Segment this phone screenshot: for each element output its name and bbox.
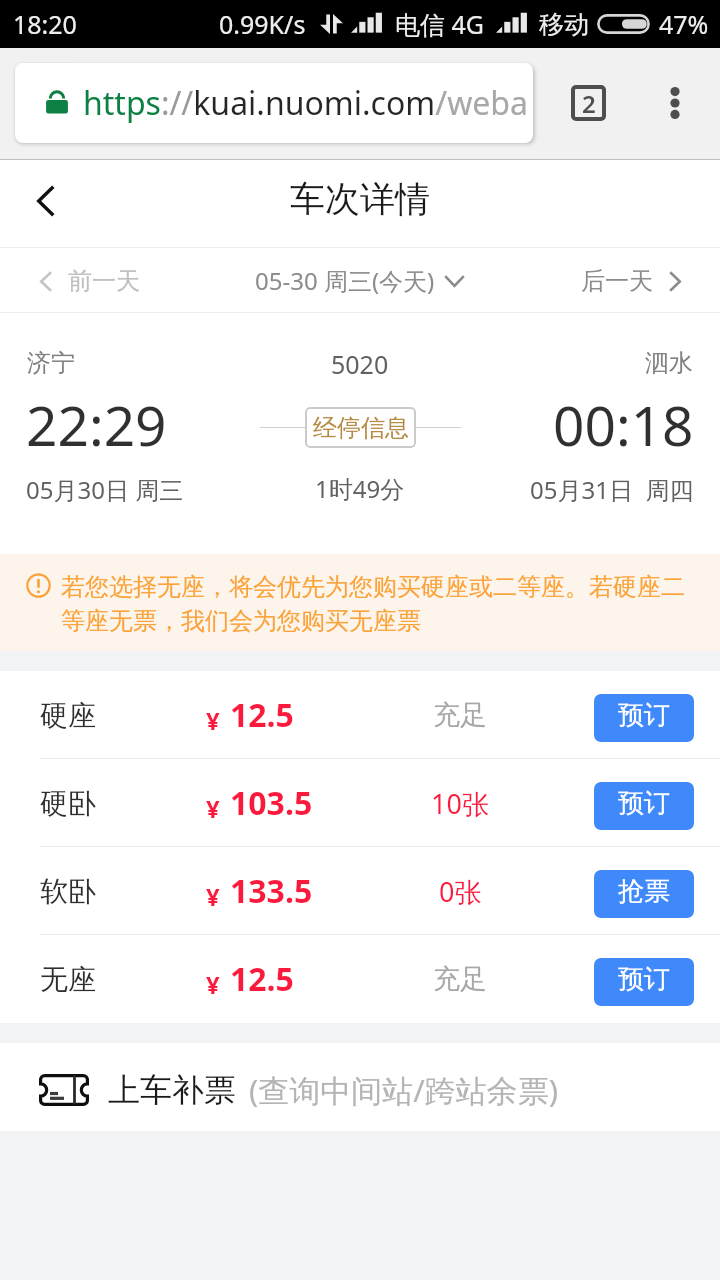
button[interactable]: 预订	[594, 694, 694, 742]
staticText: ¥	[206, 880, 220, 913]
button[interactable]: Tabs	[571, 85, 606, 121]
button[interactable]: https://kuai.nuomi.com/weba	[15, 63, 533, 143]
staticText: 济宁	[27, 348, 75, 378]
staticText: ¥	[206, 704, 220, 737]
staticText: 抢票	[618, 875, 670, 908]
button[interactable]: 无座	[0, 935, 720, 1023]
staticText: 后一天	[581, 266, 653, 296]
staticText: 0张	[439, 873, 482, 910]
staticText: 硬座	[40, 698, 96, 733]
staticText: 软卧	[40, 874, 96, 909]
staticText: https://kuai.nuomi.com/weba	[83, 81, 528, 125]
staticText: 若您选择无座，将会优先为您购买硬座或二等座。若硬座二等座无票，我们会为您购买无座…	[61, 572, 694, 637]
staticText: 充足	[433, 962, 487, 996]
staticText: (查询中间站/跨站余票)	[249, 1069, 559, 1111]
staticText: 2	[582, 87, 596, 120]
staticText: 泗水	[645, 348, 693, 378]
staticText: 经停信息	[313, 413, 409, 443]
staticText: 10张	[431, 785, 489, 822]
staticText: 预订	[618, 787, 670, 820]
button[interactable]: 硬座	[0, 671, 720, 759]
button[interactable]: 预订	[594, 782, 694, 830]
staticText: 电信 4G	[395, 7, 485, 41]
staticText: 移动	[539, 9, 589, 40]
button[interactable]: 前一天	[32, 258, 148, 304]
staticText: 预订	[618, 699, 670, 732]
staticText: 5020	[331, 347, 389, 381]
staticText: 前一天	[68, 266, 140, 296]
staticText: 12.5	[230, 957, 294, 1001]
staticText: 充足	[433, 698, 487, 732]
button[interactable]: 经停信息	[305, 407, 416, 448]
staticText: 无座	[40, 962, 96, 997]
staticText: 22:29	[26, 387, 167, 462]
button[interactable]: 硬卧	[0, 759, 720, 847]
staticText: 00:18	[553, 387, 694, 462]
staticText: 0.99K/s	[219, 7, 306, 41]
staticText: 预订	[618, 963, 670, 996]
staticText: 133.5	[230, 869, 313, 913]
staticText: 47%	[659, 7, 709, 41]
staticText: 1时49分	[315, 472, 405, 505]
staticText: ¥	[206, 792, 220, 825]
staticText: 12.5	[230, 693, 294, 737]
button[interactable]: 上车补票	[0, 1043, 720, 1131]
staticText: 05月30日 周三	[26, 473, 184, 506]
staticText: 103.5	[230, 781, 313, 825]
staticText: 18:20	[13, 7, 77, 41]
staticText: 硬卧	[40, 786, 96, 821]
staticText: 05月31日 周四	[530, 473, 694, 506]
button[interactable]: 05-30 周三(今天)	[247, 256, 473, 305]
staticText: 上车补票	[108, 1070, 236, 1110]
button[interactable]: More options	[654, 79, 696, 127]
button[interactable]: 后一天	[573, 258, 689, 304]
button[interactable]: 预订	[594, 958, 694, 1006]
button[interactable]: 抢票	[594, 870, 694, 918]
button[interactable]: 软卧	[0, 847, 720, 935]
staticText: 车次详情	[290, 177, 430, 221]
button[interactable]: Back	[2, 157, 90, 245]
staticText: ¥	[206, 968, 220, 1001]
staticText: 05-30 周三(今天)	[255, 264, 435, 297]
